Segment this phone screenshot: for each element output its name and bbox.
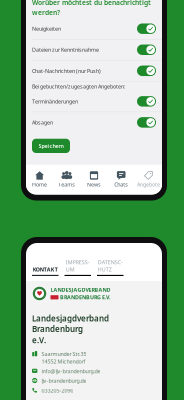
staticText: Neuigkeiten — [32, 25, 61, 32]
button[interactable]: News — [80, 168, 108, 191]
staticText: e.V. — [32, 335, 46, 345]
staticText: IMPRESSUM — [66, 259, 90, 273]
button[interactable]: DATENSCHUTZ — [97, 259, 123, 276]
staticText: Home — [32, 181, 47, 188]
staticText: info@ljv-brandenburg.de — [41, 367, 100, 375]
button[interactable]: 033205-2090 — [32, 387, 156, 394]
staticText: 14552 Michendorf — [41, 358, 85, 365]
button[interactable]: Dateien zur Kenntnisnahme — [26, 39, 162, 60]
staticText: Speichern — [38, 142, 63, 149]
staticText: DATENSCHUTZ — [98, 259, 123, 273]
staticText: Angebote — [137, 181, 160, 188]
button[interactable]: IMPRESSUM — [64, 259, 91, 276]
button[interactable]: Absagen — [26, 112, 162, 133]
staticText: Terminänderungen — [32, 98, 78, 105]
staticText: Bei gebuchten/zugesagten Angeboten: — [32, 83, 125, 90]
staticText: Absagen — [32, 119, 53, 126]
button[interactable]: Chats — [108, 168, 135, 191]
staticText: werden? — [32, 8, 60, 17]
button[interactable]: Home — [26, 168, 53, 191]
button[interactable]: Saarmunder Str. 35 — [32, 350, 156, 365]
button[interactable]: Terminänderungen — [26, 91, 162, 112]
button[interactable]: Angebote — [135, 168, 162, 191]
staticText: ljv-brandenburg.de — [41, 377, 86, 384]
staticText: News — [87, 181, 101, 188]
staticText: Saarmunder Str. 35 — [41, 350, 86, 357]
staticText: Chats — [114, 181, 128, 188]
staticText: Landesjagdverband Brandenburg — [32, 313, 109, 334]
button[interactable]: info@ljv-brandenburg.de — [32, 367, 156, 375]
staticText: Worüber möchtest du benachrichtigt — [32, 0, 151, 7]
staticText: Chat-Nachrichten (nur Push) — [32, 67, 101, 74]
button[interactable]: Chat-Nachrichten (nur Push) — [26, 60, 162, 81]
staticText: BRANDENBURG E.V. — [60, 294, 110, 301]
button[interactable]: ljv-brandenburg.de — [32, 377, 156, 384]
staticText: LANDESJAGDVERBAND — [50, 286, 110, 293]
staticText: Dateien zur Kenntnisnahme — [32, 46, 99, 53]
button[interactable]: Teams — [53, 168, 80, 191]
staticText: 033205-2090 — [41, 387, 73, 394]
button[interactable]: Speichern — [32, 139, 70, 153]
staticText: Teams — [58, 181, 75, 188]
button[interactable]: Neuigkeiten — [26, 18, 162, 39]
staticText: KONTAKT — [33, 266, 58, 273]
button[interactable]: KONTAKT — [32, 266, 58, 276]
